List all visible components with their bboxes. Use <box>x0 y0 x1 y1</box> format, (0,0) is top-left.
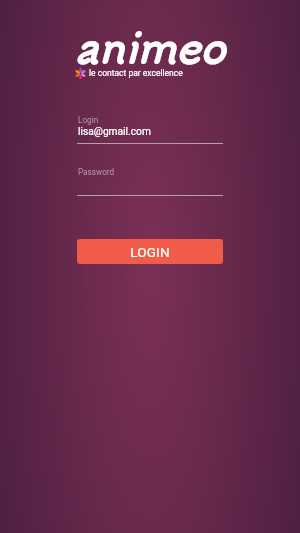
button[interactable]: Password <box>77 162 223 196</box>
button[interactable]: Login <box>77 110 223 144</box>
staticText: animeo <box>75 16 226 75</box>
staticText: Password <box>78 167 115 177</box>
staticText: LOGIN <box>130 244 170 260</box>
staticText: le contact par excellence <box>89 68 183 78</box>
staticText: Login <box>78 115 99 125</box>
staticText: lisa@gmail.com <box>78 126 151 138</box>
button[interactable]: LOGIN <box>77 239 223 264</box>
